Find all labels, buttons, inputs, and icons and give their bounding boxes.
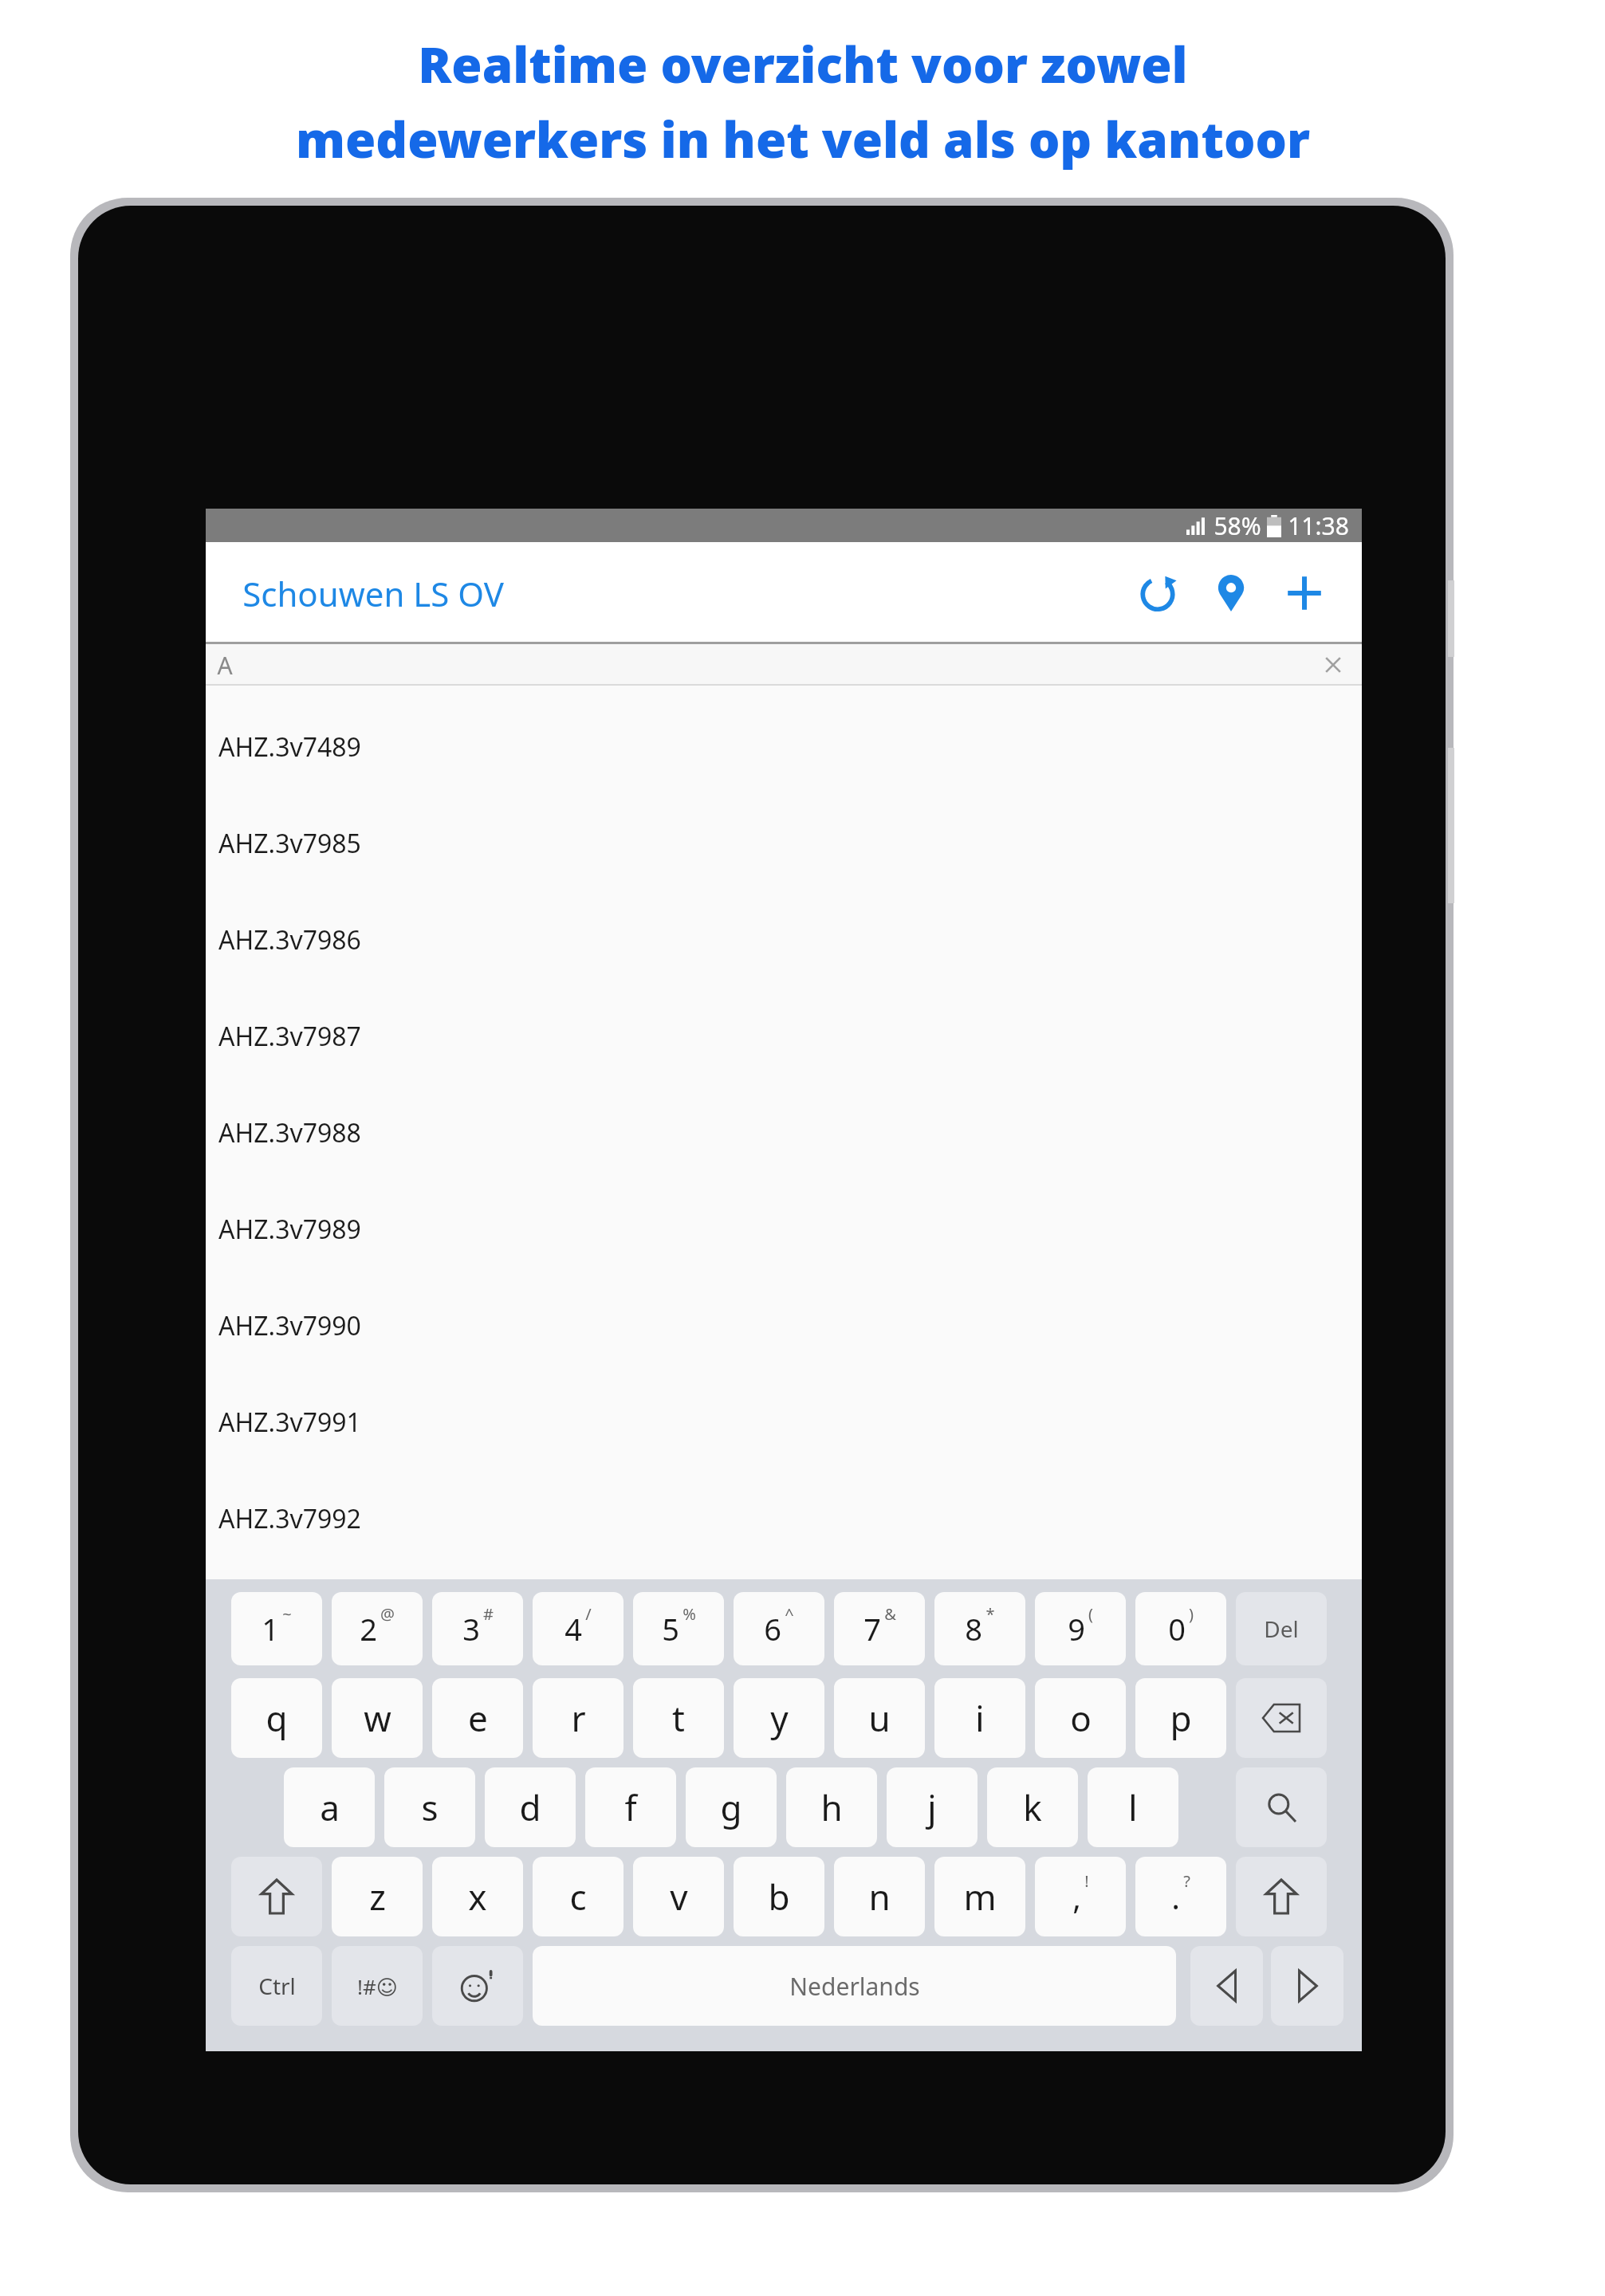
button[interactable]: !#☺ [332, 1946, 423, 2026]
staticText: AHZ.3v7988 [218, 1115, 361, 1150]
button[interactable]: l [1088, 1767, 1178, 1847]
button[interactable]: AHZ.3v7991 [206, 1374, 1362, 1470]
button[interactable]: Location [1194, 556, 1268, 630]
button[interactable]: Add [1268, 556, 1341, 630]
button[interactable]: p [1135, 1678, 1226, 1758]
button[interactable]: 7 [834, 1592, 925, 1665]
staticText: x [468, 1873, 487, 1921]
button[interactable]: Del [1236, 1592, 1327, 1665]
button[interactable]: v [633, 1857, 724, 1936]
button[interactable]: Clear [1317, 649, 1349, 681]
button[interactable]: 0 [1135, 1592, 1226, 1665]
staticText: 5 [662, 1608, 679, 1649]
staticText: q [266, 1694, 288, 1742]
staticText: h [820, 1783, 843, 1831]
staticText: 2 [360, 1608, 377, 1649]
button[interactable]: k [987, 1767, 1078, 1847]
button[interactable]: q [231, 1678, 322, 1758]
button[interactable]: Shift [1236, 1857, 1327, 1936]
staticText: ^ [785, 1603, 794, 1625]
button[interactable]: c [533, 1857, 624, 1936]
staticText: ( [1088, 1603, 1093, 1625]
button[interactable]: AHZ.3v7990 [206, 1277, 1362, 1374]
button[interactable]: Ctrl [231, 1946, 322, 2026]
button[interactable]: 8 [934, 1592, 1025, 1665]
button[interactable]: AHZ.3v7989 [206, 1181, 1362, 1277]
staticText: Ctrl [258, 1971, 296, 2001]
staticText: m [963, 1873, 997, 1921]
staticText: a [320, 1783, 340, 1831]
button[interactable]: 4 [533, 1592, 624, 1665]
button[interactable]: AHZ.3v7986 [206, 891, 1362, 988]
button[interactable]: Refresh [1121, 556, 1194, 630]
button[interactable]: g [686, 1767, 777, 1847]
staticText: Nederlands [789, 1970, 920, 2003]
button[interactable]: b [734, 1857, 824, 1936]
button[interactable]: AHZ.3v7992 [206, 1470, 1362, 1567]
button[interactable]: x [432, 1857, 523, 1936]
button[interactable]: AHZ.3v7985 [206, 795, 1362, 891]
button[interactable]: e [432, 1678, 523, 1758]
staticText: t [672, 1694, 685, 1742]
button[interactable]: AHZ.3v7987 [206, 988, 1362, 1084]
staticText: c [569, 1873, 587, 1921]
staticText: 0 [1168, 1608, 1186, 1649]
button[interactable]: u [834, 1678, 925, 1758]
button[interactable]: m [934, 1857, 1025, 1936]
button[interactable]: r [533, 1678, 624, 1758]
button[interactable]: . [1135, 1857, 1226, 1936]
button[interactable]: a [284, 1767, 375, 1847]
button[interactable]: f [585, 1767, 676, 1847]
button[interactable]: y [734, 1678, 824, 1758]
button[interactable]: Nederlands [533, 1946, 1176, 2026]
staticText: d [519, 1783, 541, 1831]
button[interactable]: 6 [734, 1592, 824, 1665]
button[interactable]: Backspace [1236, 1678, 1327, 1758]
staticText: & [884, 1603, 896, 1625]
staticText: 8 [965, 1608, 982, 1649]
button[interactable]: AHZ.3v7988 [206, 1084, 1362, 1181]
staticText: % [683, 1603, 696, 1625]
button[interactable]: j [887, 1767, 978, 1847]
button[interactable]: i [934, 1678, 1025, 1758]
button[interactable]: AHZ.3v7489 [206, 698, 1362, 795]
button[interactable]: 9 [1035, 1592, 1126, 1665]
staticText: # [483, 1603, 494, 1625]
staticText: b [768, 1873, 790, 1921]
button[interactable]: 1 [231, 1592, 322, 1665]
button[interactable]: Move left [1190, 1946, 1263, 2026]
button[interactable]: z [332, 1857, 423, 1936]
staticText: medewerkers in het veld als op kantoor [296, 105, 1310, 172]
staticText: AHZ.3v7986 [218, 922, 361, 957]
staticText: @ [380, 1603, 395, 1625]
staticText: Del [1264, 1614, 1299, 1644]
staticText: p [1170, 1694, 1192, 1742]
button[interactable]: , [1035, 1857, 1126, 1936]
button[interactable]: n [834, 1857, 925, 1936]
staticText: i [975, 1694, 985, 1742]
button[interactable]: o [1035, 1678, 1126, 1758]
staticText: AHZ.3v7992 [218, 1501, 361, 1536]
button[interactable]: Emoji and voice input [432, 1946, 523, 2026]
staticText: , [1072, 1875, 1081, 1918]
staticText: 3 [462, 1608, 480, 1649]
staticText: AHZ.3v7990 [218, 1308, 361, 1343]
staticText: 6 [764, 1608, 781, 1649]
button[interactable]: d [485, 1767, 576, 1847]
staticText: * [985, 1603, 995, 1625]
button[interactable]: 3 [432, 1592, 523, 1665]
button[interactable]: Search [1236, 1767, 1327, 1847]
staticText: ! [1084, 1870, 1089, 1892]
staticText: . [1171, 1875, 1180, 1918]
button[interactable]: s [384, 1767, 475, 1847]
staticText: A [217, 649, 233, 682]
button[interactable]: Shift [231, 1857, 322, 1936]
button[interactable]: t [633, 1678, 724, 1758]
staticText: 4 [565, 1608, 582, 1649]
staticText: u [868, 1694, 891, 1742]
button[interactable]: Move right [1271, 1946, 1343, 2026]
button[interactable]: h [786, 1767, 877, 1847]
button[interactable]: w [332, 1678, 423, 1758]
button[interactable]: 2 [332, 1592, 423, 1665]
button[interactable]: 5 [633, 1592, 724, 1665]
